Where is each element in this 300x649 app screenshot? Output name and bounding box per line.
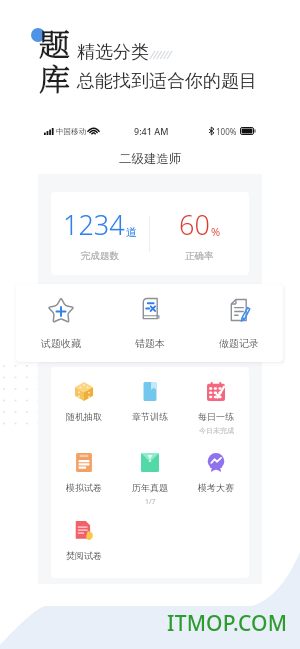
staticText: 二级建造师 [119, 151, 182, 167]
button[interactable]: 模拟试卷 [51, 453, 117, 493]
staticText: 错题本 [135, 337, 165, 350]
staticText: 库 [39, 55, 70, 100]
staticText: 章节训练 [132, 411, 168, 422]
staticText: 中国移动 [56, 127, 86, 136]
staticText: 精选分类 [77, 41, 149, 64]
staticText: 每日一练 [198, 411, 234, 422]
staticText: 焚阅试卷 [66, 550, 102, 561]
staticText: 完成题数 [81, 250, 119, 262]
button[interactable]: 章节训练 [117, 382, 183, 422]
button[interactable]: 试题收藏 [16, 284, 105, 362]
staticText: 总能找到适合你的题目 [77, 70, 257, 93]
staticText: 1/7 [145, 497, 156, 507]
staticText: 9:41 AM [134, 125, 169, 137]
staticText: 60 [179, 206, 210, 243]
staticText: 做题记录 [219, 337, 259, 350]
staticText: 道 [126, 225, 137, 239]
staticText: 1234 [63, 206, 125, 243]
staticText: 今日未完成 [199, 426, 234, 435]
button[interactable]: 模考大赛 [183, 453, 249, 493]
button[interactable]: 每日一练 [183, 382, 249, 435]
staticText: % [211, 224, 221, 239]
button[interactable]: 随机抽取 [51, 382, 117, 422]
staticText: 试题收藏 [41, 337, 81, 350]
staticText: 100% [216, 126, 237, 137]
button[interactable]: 历年真题 [117, 453, 183, 507]
staticText: 正确率 [185, 250, 214, 262]
staticText: 随机抽取 [66, 411, 102, 422]
button[interactable]: 做题记录 [194, 284, 283, 362]
staticText: 历年真题 [132, 482, 168, 493]
staticText: 模考大赛 [198, 482, 234, 493]
button[interactable]: 焚阅试卷 [51, 521, 117, 561]
staticText: 模拟试卷 [66, 482, 102, 493]
button[interactable]: 错题本 [105, 284, 194, 362]
staticText: ITMOP.COM [167, 609, 288, 638]
staticText: 题 [39, 20, 70, 65]
